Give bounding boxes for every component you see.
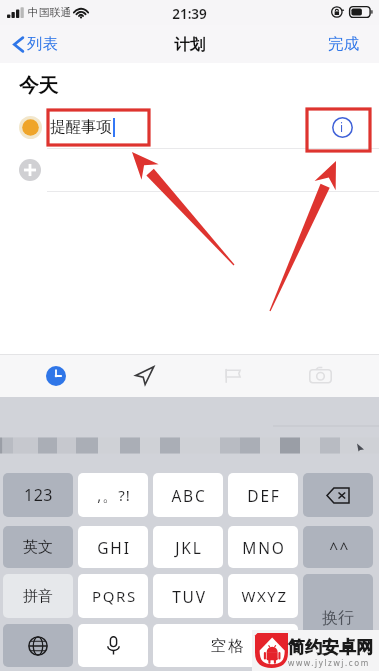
button[interactable]: DEF xyxy=(228,473,298,517)
button[interactable]: 123 xyxy=(3,473,73,517)
button[interactable]: 列表 xyxy=(8,25,64,63)
button[interactable]: JKL xyxy=(153,526,223,568)
staticText: TUV xyxy=(172,586,207,607)
staticText: ,。?! xyxy=(97,485,131,505)
staticText: i xyxy=(340,119,344,135)
staticText: GHI xyxy=(97,537,131,558)
staticText: MNO xyxy=(242,537,286,558)
staticText: 21:39 xyxy=(0,5,379,23)
staticText: 简约安卓网 xyxy=(288,637,373,658)
button[interactable]: ^^ xyxy=(303,526,373,568)
button[interactable]: 拼音 xyxy=(3,574,73,618)
staticText: 计划 xyxy=(0,35,379,55)
staticText: 换行 xyxy=(322,608,354,628)
staticText: 提醒事项 xyxy=(50,117,112,137)
button[interactable]: Change keyboard xyxy=(3,624,73,667)
staticText: 空格 xyxy=(209,636,245,656)
button[interactable]: ,。?! xyxy=(78,473,148,517)
button[interactable]: MNO xyxy=(228,526,298,568)
button[interactable]: WXYZ xyxy=(228,574,298,618)
button[interactable]: TUV xyxy=(153,574,223,618)
button[interactable]: 完成 xyxy=(320,25,379,63)
button[interactable]: PQRS xyxy=(78,574,148,618)
button[interactable]: 英文 xyxy=(3,526,73,568)
button[interactable]: Dictation xyxy=(78,624,148,667)
button[interactable]: Backspace xyxy=(303,473,373,517)
button[interactable] xyxy=(0,148,379,191)
button[interactable]: ABC xyxy=(153,473,223,517)
staticText: 中国联通 xyxy=(28,6,72,20)
button[interactable]: 提醒事项 xyxy=(0,106,379,148)
staticText: 完成 xyxy=(328,34,359,54)
staticText: PQRS xyxy=(92,586,137,606)
staticText: ^^ xyxy=(329,537,350,558)
button[interactable]: Remind me at a location xyxy=(100,354,188,397)
staticText: ABC xyxy=(171,485,207,506)
button[interactable]: 换行 xyxy=(303,574,373,667)
button[interactable]: Remind me at a time xyxy=(12,354,100,397)
button[interactable]: Flag xyxy=(188,354,276,397)
staticText: 列表 xyxy=(27,34,58,54)
staticText: 123 xyxy=(24,484,53,506)
staticText: 今天 xyxy=(19,73,58,98)
button[interactable]: Add photo xyxy=(276,354,364,397)
staticText: DEF xyxy=(247,485,281,506)
button[interactable]: Details xyxy=(318,106,366,148)
staticText: JKL xyxy=(175,537,203,558)
staticText: www.jylzwj.com xyxy=(288,657,370,668)
button[interactable]: GHI xyxy=(78,526,148,568)
button[interactable]: 空格 xyxy=(153,624,298,667)
staticText: WXYZ xyxy=(241,586,288,606)
staticText: 英文 xyxy=(23,538,53,557)
staticText: 拼音 xyxy=(23,587,53,606)
